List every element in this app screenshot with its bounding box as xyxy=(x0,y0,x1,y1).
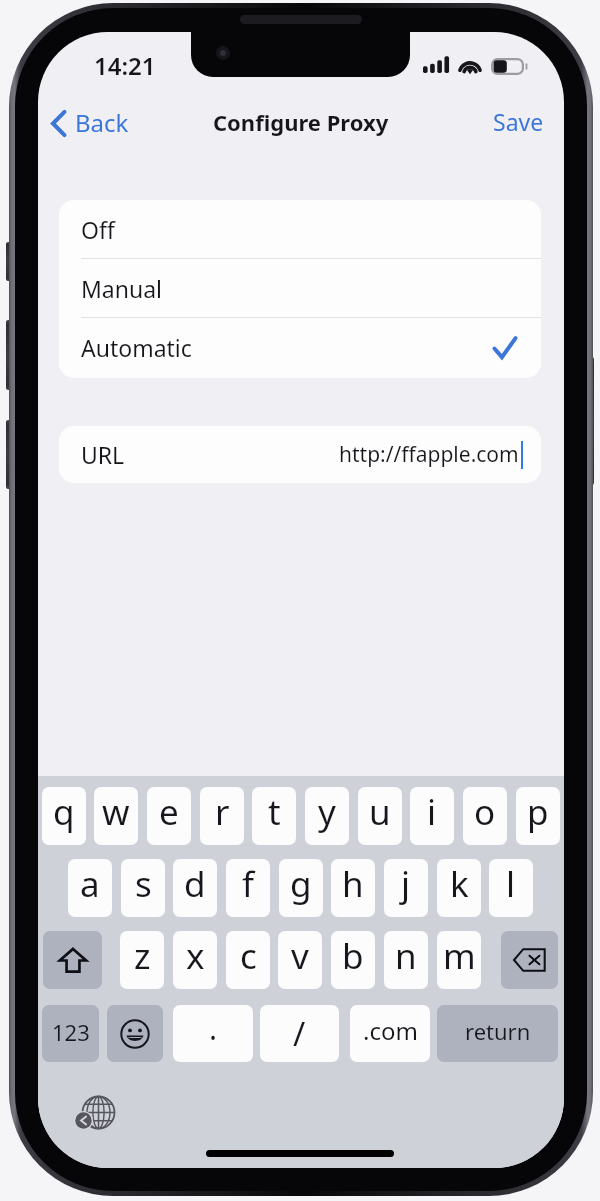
button[interactable]: URL xyxy=(59,426,541,483)
button[interactable]: j xyxy=(384,859,428,917)
button[interactable]: Save xyxy=(487,101,550,142)
staticText: Off xyxy=(81,214,115,245)
staticText: f xyxy=(242,860,255,908)
button[interactable]: i xyxy=(410,787,454,845)
button[interactable]: return xyxy=(437,1005,558,1062)
button[interactable]: u xyxy=(358,787,402,845)
button[interactable]: r xyxy=(200,787,244,845)
button[interactable]: b xyxy=(331,931,375,989)
staticText: URL xyxy=(81,439,125,470)
button[interactable]: Manual xyxy=(59,259,541,318)
button[interactable]: w xyxy=(94,787,138,845)
button[interactable]: h xyxy=(331,859,375,917)
staticText: Manual xyxy=(81,273,163,304)
staticText: w xyxy=(102,788,130,836)
button[interactable]: p xyxy=(516,787,560,845)
staticText: p xyxy=(527,788,549,836)
staticText: v xyxy=(291,932,309,980)
staticText: .com xyxy=(363,1014,418,1047)
staticText: 123 xyxy=(52,1017,90,1047)
staticText: h xyxy=(342,860,364,908)
button[interactable]: d xyxy=(173,859,217,917)
staticText: e xyxy=(159,788,179,836)
staticText: g xyxy=(290,860,312,908)
staticText: / xyxy=(293,1011,306,1056)
button[interactable]: q xyxy=(42,787,86,845)
button[interactable]: Back xyxy=(45,102,135,145)
staticText: b xyxy=(342,932,364,980)
button[interactable]: e xyxy=(147,787,191,845)
button[interactable]: a xyxy=(68,859,112,917)
staticText: k xyxy=(450,860,469,908)
button[interactable]: f xyxy=(226,859,270,917)
staticText: Save xyxy=(493,106,544,137)
staticText: j xyxy=(401,860,411,908)
staticText: 14:21 xyxy=(94,49,156,82)
staticText: Back xyxy=(75,106,129,139)
staticText: x xyxy=(186,932,205,980)
button[interactable]: x xyxy=(173,931,217,989)
staticText: q xyxy=(53,788,75,836)
staticText: i xyxy=(427,788,437,836)
button[interactable]: Change keyboard language xyxy=(69,1088,122,1141)
button[interactable]: Backspace xyxy=(501,931,558,989)
button[interactable]: / xyxy=(260,1005,339,1062)
staticText: a xyxy=(80,860,100,908)
button[interactable]: 123 xyxy=(42,1005,99,1062)
button[interactable]: o xyxy=(463,787,507,845)
button[interactable]: .com xyxy=(350,1005,430,1062)
staticText: y xyxy=(318,788,336,836)
staticText: m xyxy=(443,932,476,980)
button[interactable]: Emoji xyxy=(107,1005,163,1062)
button[interactable]: t xyxy=(252,787,296,845)
button[interactable]: c xyxy=(226,931,270,989)
button[interactable]: g xyxy=(279,859,323,917)
staticText: n xyxy=(395,932,417,980)
button[interactable]: Shift xyxy=(43,931,102,989)
staticText: s xyxy=(135,860,152,908)
button[interactable]: y xyxy=(305,787,349,845)
staticText: d xyxy=(184,860,206,908)
button[interactable]: k xyxy=(437,859,481,917)
button[interactable]: . xyxy=(173,1005,253,1062)
staticText: return xyxy=(465,1016,531,1046)
staticText: l xyxy=(506,860,516,908)
staticText: Automatic xyxy=(81,332,192,363)
button[interactable]: n xyxy=(384,931,428,989)
button[interactable]: l xyxy=(489,859,533,917)
staticText: . xyxy=(209,1008,218,1049)
button[interactable]: m xyxy=(437,931,481,989)
staticText: t xyxy=(268,788,281,836)
button[interactable]: s xyxy=(121,859,165,917)
staticText: http://ffapple.com xyxy=(339,440,519,469)
button[interactable]: z xyxy=(120,931,164,989)
staticText: u xyxy=(369,788,391,836)
button[interactable]: v xyxy=(278,931,322,989)
staticText: z xyxy=(134,932,151,980)
staticText: r xyxy=(215,788,230,836)
button[interactable]: Automatic xyxy=(59,318,541,377)
staticText: o xyxy=(474,788,496,836)
staticText: Configure Proxy xyxy=(213,107,389,137)
staticText: c xyxy=(240,932,257,980)
button[interactable]: Off xyxy=(59,200,541,259)
